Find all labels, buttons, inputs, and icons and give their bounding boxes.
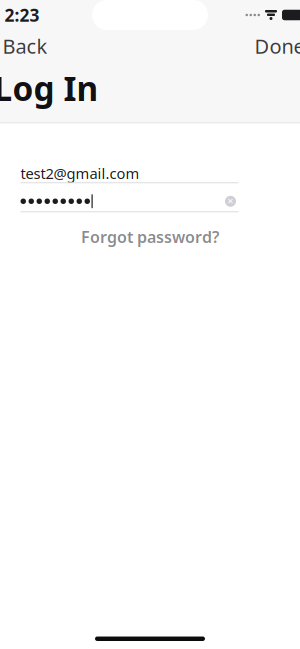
staticText: Log In xyxy=(0,66,98,110)
button[interactable]: Clear password xyxy=(222,193,238,209)
staticText: Back xyxy=(2,33,47,59)
staticText: Done xyxy=(254,33,300,59)
button[interactable]: Forgot password? xyxy=(71,220,229,253)
staticText: test2@gmail.com xyxy=(20,163,139,183)
staticText: Forgot password? xyxy=(81,226,219,247)
button[interactable]: ‹ xyxy=(0,27,57,65)
button[interactable]: Done xyxy=(242,27,300,65)
staticText: 2:23 xyxy=(4,3,39,26)
staticText: ✕ xyxy=(227,197,234,206)
